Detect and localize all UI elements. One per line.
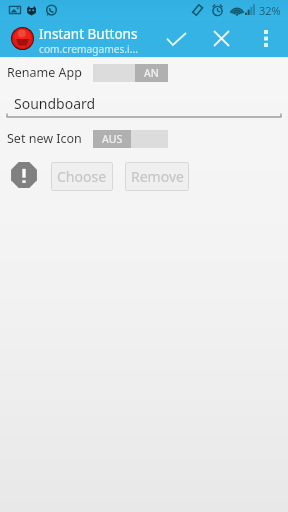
button[interactable]: Choose <box>51 162 113 191</box>
button[interactable]: More options <box>250 20 282 57</box>
staticText: Instant Buttons <box>39 25 138 43</box>
staticText: Set new Icon <box>7 130 82 147</box>
button[interactable]: Remove <box>125 162 189 191</box>
button[interactable]: AUS <box>93 130 168 148</box>
other: Warning <box>10 161 38 189</box>
button[interactable]: Apply <box>157 20 195 57</box>
staticText: Choose <box>57 167 107 186</box>
staticText: Rename App <box>7 64 82 81</box>
button[interactable]: Cancel <box>202 20 240 57</box>
staticText: com.cremagames.i... <box>39 42 138 56</box>
button[interactable]: AN <box>93 64 168 82</box>
staticText: AUS <box>102 132 123 146</box>
staticText: AN <box>144 66 159 80</box>
staticText: 32% <box>259 3 281 18</box>
staticText: Soundboard <box>14 94 96 113</box>
staticText: Remove <box>131 167 184 186</box>
